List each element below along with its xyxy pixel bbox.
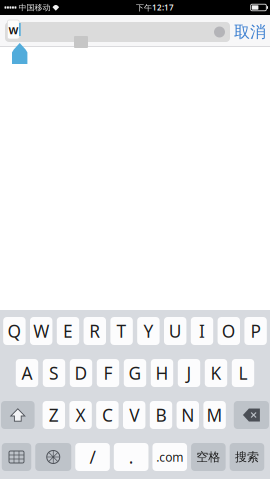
button[interactable]: P: [244, 317, 267, 345]
staticText: 空格: [196, 450, 220, 464]
button[interactable]: .: [114, 443, 148, 471]
staticText: V: [129, 403, 139, 426]
button[interactable]: D: [70, 359, 92, 387]
staticText: w: [8, 21, 18, 37]
staticText: D: [74, 361, 87, 384]
button[interactable]: J: [178, 359, 200, 387]
staticText: Q: [7, 319, 21, 342]
button[interactable]: Next keyboard: [35, 443, 71, 471]
staticText: .: [129, 445, 134, 468]
staticText: A: [21, 361, 32, 384]
button[interactable]: O: [218, 317, 240, 345]
staticText: S: [49, 361, 59, 384]
button[interactable]: C: [96, 401, 119, 429]
button[interactable]: Q: [3, 317, 26, 345]
button[interactable]: Y: [137, 317, 160, 345]
staticText: B: [155, 403, 166, 426]
staticText: J: [186, 361, 191, 384]
button[interactable]: 搜索: [230, 443, 264, 471]
button[interactable]: G: [124, 359, 146, 387]
button[interactable]: .com: [152, 443, 187, 471]
staticText: T: [117, 319, 127, 342]
button[interactable]: 取消: [234, 22, 266, 42]
button[interactable]: H: [151, 359, 173, 387]
button[interactable]: M: [203, 401, 226, 429]
button[interactable]: U: [164, 317, 186, 345]
button[interactable]: W: [30, 317, 52, 345]
button[interactable]: R: [84, 317, 106, 345]
button[interactable]: F: [97, 359, 119, 387]
staticText: O: [222, 319, 236, 342]
button[interactable]: E: [57, 317, 79, 345]
staticText: G: [128, 361, 141, 384]
button[interactable]: Shift: [1, 401, 35, 429]
button[interactable]: T: [110, 317, 133, 345]
button[interactable]: X: [69, 401, 92, 429]
staticText: P: [251, 319, 261, 342]
staticText: R: [89, 319, 100, 342]
button[interactable]: B: [150, 401, 172, 429]
staticText: Y: [143, 319, 153, 342]
staticText: E: [63, 319, 73, 342]
staticText: 下午12:17: [136, 2, 174, 13]
button[interactable]: S: [43, 359, 65, 387]
button[interactable]: A: [16, 359, 38, 387]
button[interactable]: K: [205, 359, 227, 387]
button[interactable]: L: [232, 359, 254, 387]
button[interactable]: Number and symbol keyboard: [2, 443, 31, 471]
staticText: 取消: [234, 22, 266, 42]
staticText: 搜索: [235, 450, 259, 464]
staticText: .com: [156, 449, 183, 465]
staticText: U: [169, 319, 182, 342]
staticText: K: [210, 361, 221, 384]
staticText: X: [76, 403, 86, 426]
staticText: /: [89, 445, 95, 468]
button[interactable]: V: [123, 401, 145, 429]
button[interactable]: Z: [43, 401, 65, 429]
button[interactable]: I: [191, 317, 213, 345]
staticText: I: [199, 319, 205, 342]
staticText: Z: [49, 403, 59, 426]
staticText: M: [207, 403, 223, 426]
staticText: C: [102, 403, 113, 426]
staticText: H: [155, 361, 168, 384]
button[interactable]: /: [75, 443, 110, 471]
button[interactable]: Delete: [234, 401, 269, 429]
staticText: 中国移动: [18, 3, 50, 12]
button[interactable]: Clear text: [214, 26, 230, 37]
staticText: W: [33, 319, 49, 342]
button[interactable]: 空格: [191, 443, 226, 471]
button[interactable]: N: [177, 401, 199, 429]
staticText: F: [103, 361, 112, 384]
staticText: L: [238, 361, 247, 384]
staticText: N: [181, 403, 194, 426]
